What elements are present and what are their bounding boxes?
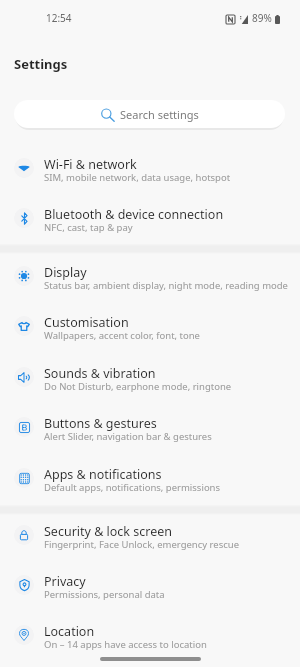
staticText: Do Not Disturb, earphone mode, ringtone (44, 380, 232, 393)
button[interactable]: Location (0, 613, 300, 663)
staticText: Display (44, 264, 87, 281)
staticText: Wi-Fi & network (44, 156, 137, 173)
staticText: Bluetooth & device connection (44, 206, 224, 223)
staticText: NFC, cast, tap & pay (44, 221, 133, 234)
staticText: Alert Slider, navigation bar & gestures (44, 430, 212, 443)
button[interactable]: Customisation (0, 304, 300, 354)
staticText: 89% (252, 11, 272, 25)
staticText: Buttons & gestures (44, 415, 157, 432)
button[interactable]: Display (0, 254, 300, 304)
button[interactable]: Privacy (0, 563, 300, 613)
staticText: Apps & notifications (44, 466, 162, 483)
button[interactable]: Wi-Fi & network (0, 146, 300, 196)
button[interactable]: Bluetooth & device connection (0, 196, 300, 246)
staticText: Status bar, ambient display, night mode,… (44, 279, 288, 292)
button[interactable]: Buttons & gestures (0, 405, 300, 455)
staticText: Privacy (44, 573, 86, 590)
staticText: Location (44, 623, 95, 640)
staticText: Settings (14, 55, 68, 73)
button[interactable]: Search settings (14, 100, 285, 128)
staticText: Fingerprint, Face Unlock, emergency resc… (44, 538, 240, 551)
staticText: Permissions, personal data (44, 588, 165, 601)
staticText: SIM, mobile network, data usage, hotspot (44, 171, 231, 184)
staticText: Search settings (120, 107, 199, 122)
staticText: On – 14 apps have access to location (44, 638, 207, 651)
staticText: Sounds & vibration (44, 365, 156, 382)
staticText: 12:54 (46, 11, 72, 25)
button[interactable]: Security & lock screen (0, 513, 300, 563)
button[interactable]: Sounds & vibration (0, 355, 300, 405)
staticText: Customisation (44, 314, 129, 331)
staticText: Wallpapers, accent color, font, tone (44, 329, 200, 342)
button[interactable]: Apps & notifications (0, 456, 300, 506)
staticText: Default apps, notifications, permissions (44, 481, 221, 494)
staticText: Security & lock screen (44, 523, 173, 540)
